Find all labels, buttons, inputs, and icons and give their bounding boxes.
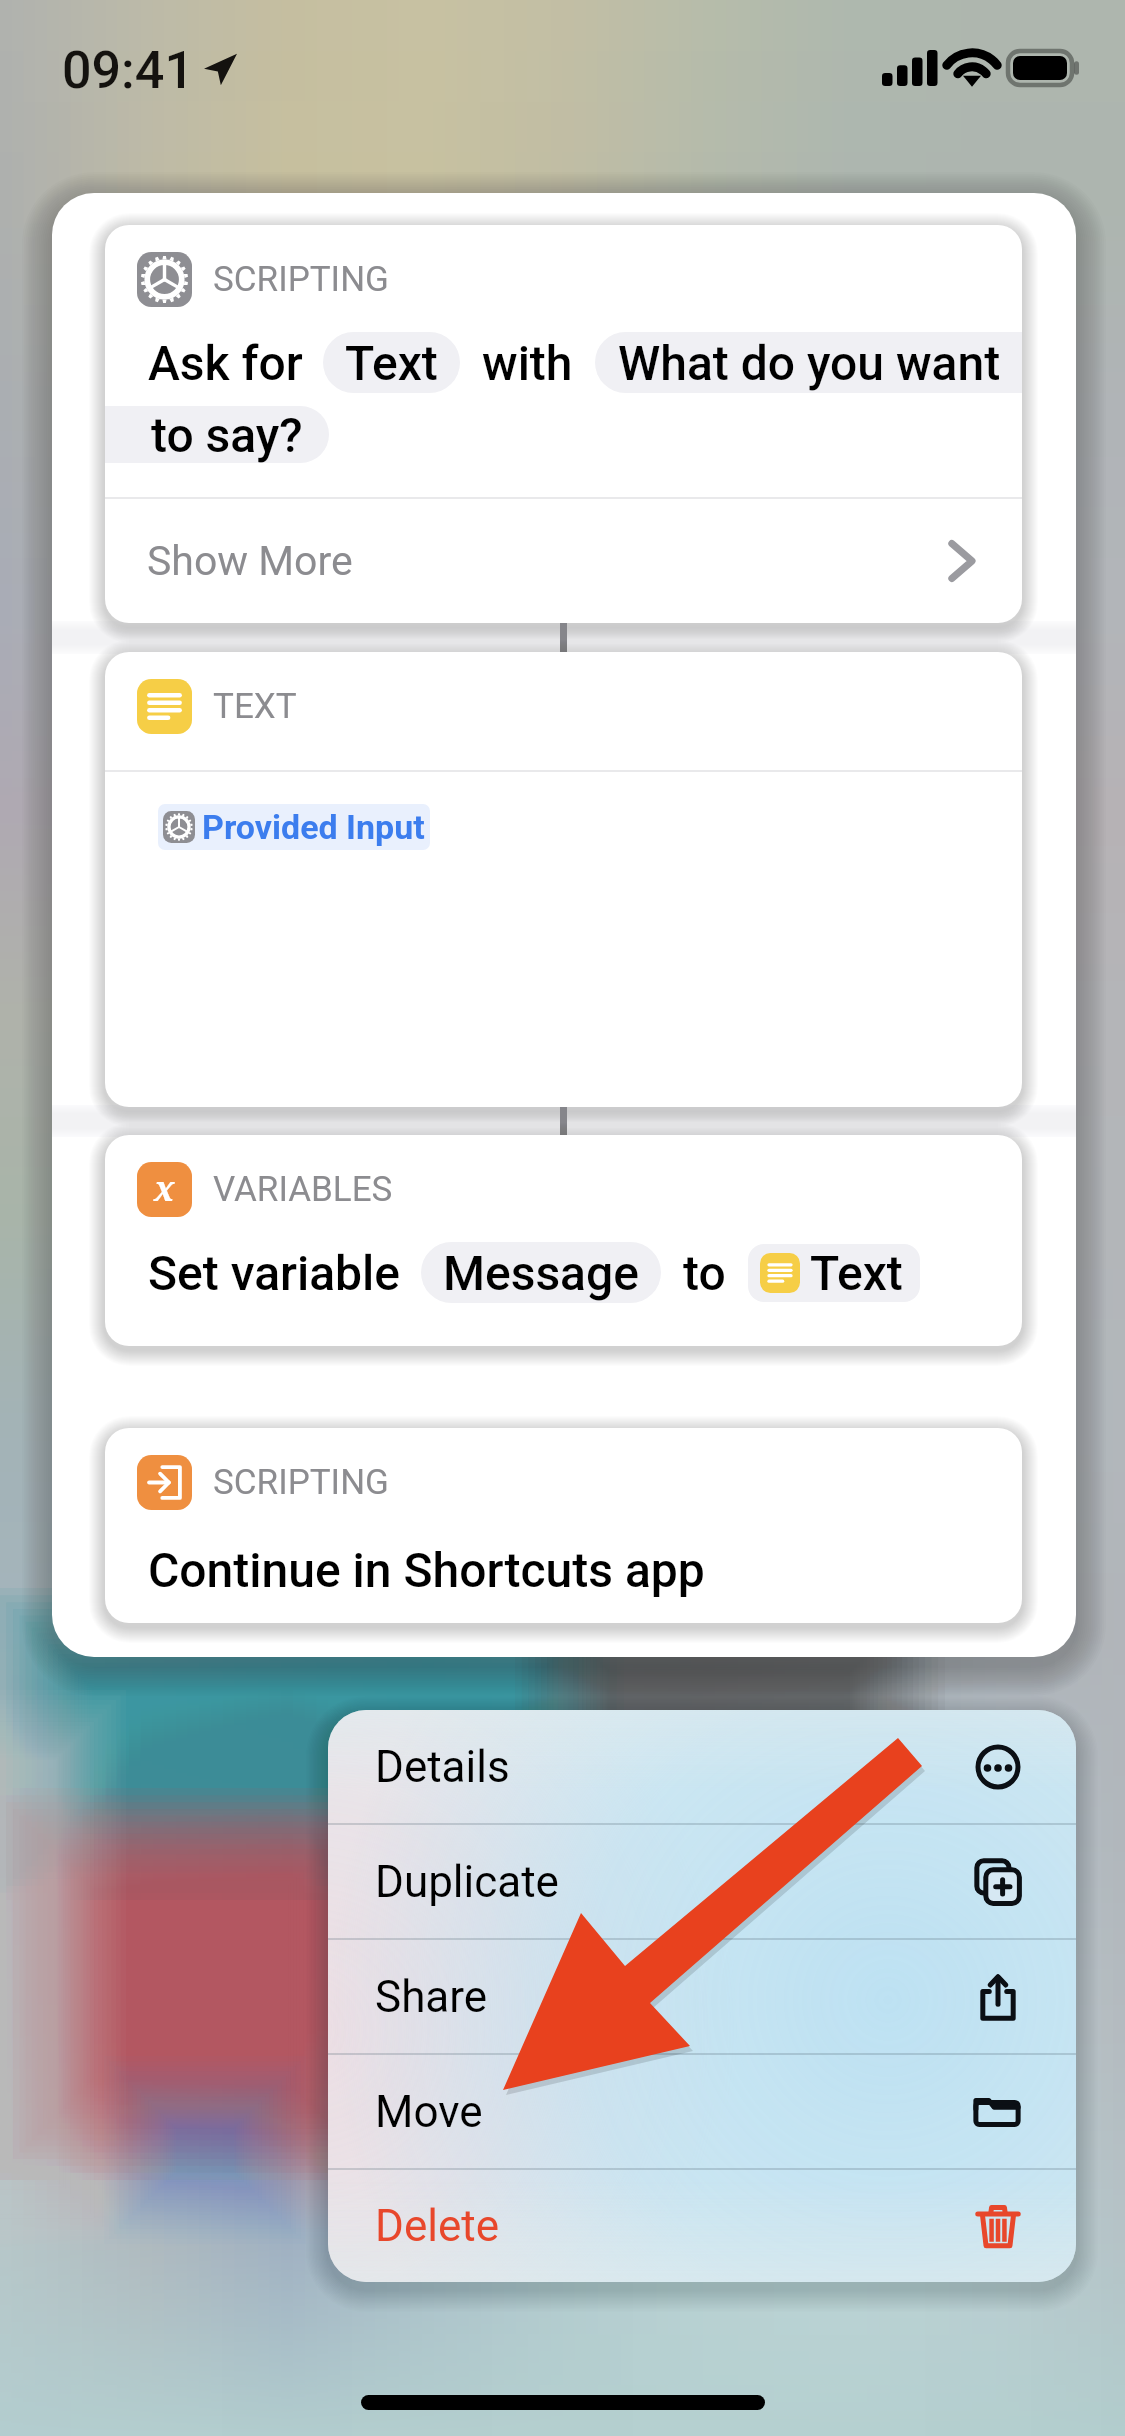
- staticText: Share: [375, 1971, 488, 2023]
- button[interactable]: Duplicate: [328, 1825, 1076, 1938]
- button[interactable]: Details: [328, 1710, 1076, 1823]
- staticText: Ask for: [148, 335, 303, 391]
- staticText: 09:41: [62, 40, 194, 98]
- staticText: Delete: [375, 2200, 499, 2252]
- button[interactable]: SCRIPTING: [105, 1428, 1022, 1623]
- staticText: Move: [375, 2086, 483, 2138]
- staticText: Text: [345, 335, 438, 391]
- button[interactable]: x: [105, 1135, 1022, 1346]
- staticText: Set variable: [148, 1245, 401, 1301]
- button[interactable]: Move: [328, 2055, 1076, 2168]
- staticText: x: [154, 1165, 175, 1211]
- staticText: VARIABLES: [213, 1169, 393, 1210]
- staticText: TEXT: [213, 686, 297, 727]
- button[interactable]: Delete: [328, 2170, 1076, 2282]
- staticText: Duplicate: [375, 1856, 559, 1908]
- button[interactable]: Share: [328, 1940, 1076, 2053]
- staticText: Message: [443, 1245, 639, 1301]
- button[interactable]: TEXT: [105, 652, 1022, 1107]
- staticText: What do you want: [618, 335, 1001, 391]
- staticText: with: [482, 335, 573, 391]
- staticText: Show More: [147, 537, 353, 585]
- staticText: to: [683, 1245, 726, 1301]
- staticText: SCRIPTING: [213, 1462, 389, 1503]
- staticText: Provided Input: [202, 807, 425, 847]
- staticText: Text: [810, 1245, 903, 1301]
- button[interactable]: SCRIPTING: [105, 225, 1022, 623]
- staticText: to say?: [151, 407, 303, 463]
- button[interactable]: Show More: [105, 499, 1022, 623]
- staticText: Continue in Shortcuts app: [148, 1542, 705, 1598]
- other: Show More: [938, 538, 984, 584]
- staticText: SCRIPTING: [213, 259, 389, 300]
- staticText: Details: [375, 1741, 510, 1793]
